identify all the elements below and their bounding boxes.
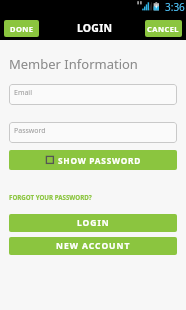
staticText: Password bbox=[14, 126, 46, 136]
staticText: CANCEL bbox=[147, 24, 180, 34]
staticText: 3:36 bbox=[165, 0, 185, 11]
button[interactable]: LOGIN bbox=[9, 214, 177, 232]
button[interactable]: Email bbox=[9, 84, 177, 105]
staticText: LOGIN bbox=[77, 21, 113, 35]
staticText: Email bbox=[14, 88, 32, 98]
staticText: NEW ACCOUNT bbox=[56, 240, 131, 252]
button[interactable]: SHOW PASSWORD bbox=[9, 150, 177, 170]
button[interactable]: DONE bbox=[4, 20, 39, 37]
button[interactable]: CANCEL bbox=[145, 20, 182, 37]
button[interactable]: NEW ACCOUNT bbox=[9, 237, 177, 255]
staticText: DONE bbox=[10, 24, 34, 34]
button[interactable]: Password bbox=[9, 122, 177, 143]
button[interactable]: FORGOT YOUR PASSWORD? bbox=[9, 189, 92, 205]
staticText: Member Information bbox=[9, 55, 138, 73]
staticText: SHOW PASSWORD bbox=[58, 155, 141, 166]
staticText: FORGOT YOUR PASSWORD? bbox=[9, 193, 92, 201]
staticText: LOGIN bbox=[77, 217, 110, 229]
